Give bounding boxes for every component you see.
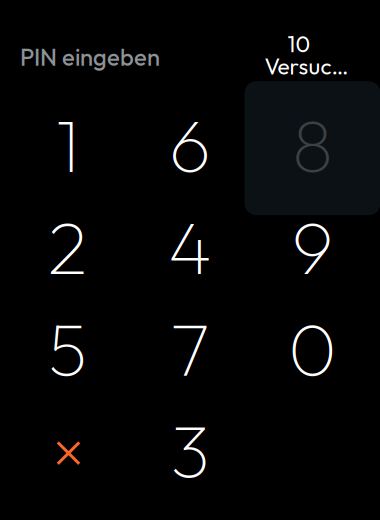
button[interactable]: 7 — [129, 297, 251, 399]
button[interactable]: 2 — [6, 196, 129, 297]
button[interactable]: 4 — [129, 196, 251, 297]
button[interactable]: Löschen — [6, 399, 129, 501]
button[interactable]: 0 — [251, 297, 374, 399]
staticText: 7 — [170, 302, 209, 395]
staticText: 4 — [168, 200, 212, 293]
staticText: 10 — [287, 30, 310, 58]
staticText: 3 — [170, 403, 209, 497]
staticText: 5 — [48, 302, 87, 395]
staticText: 6 — [169, 98, 211, 191]
staticText: 1 — [55, 98, 79, 191]
button[interactable]: 8 — [251, 94, 374, 196]
button[interactable]: 9 — [251, 196, 374, 297]
staticText: PIN eingeben — [20, 42, 160, 72]
staticText: 8 — [292, 98, 333, 191]
button[interactable]: 1 — [6, 94, 129, 196]
button[interactable]: 5 — [6, 297, 129, 399]
staticText: 0 — [288, 302, 337, 395]
button[interactable]: 3 — [129, 399, 251, 501]
staticText: Versuche — [264, 52, 354, 80]
button[interactable]: 6 — [129, 94, 251, 196]
staticText: 9 — [291, 200, 333, 293]
staticText: 2 — [47, 200, 87, 293]
